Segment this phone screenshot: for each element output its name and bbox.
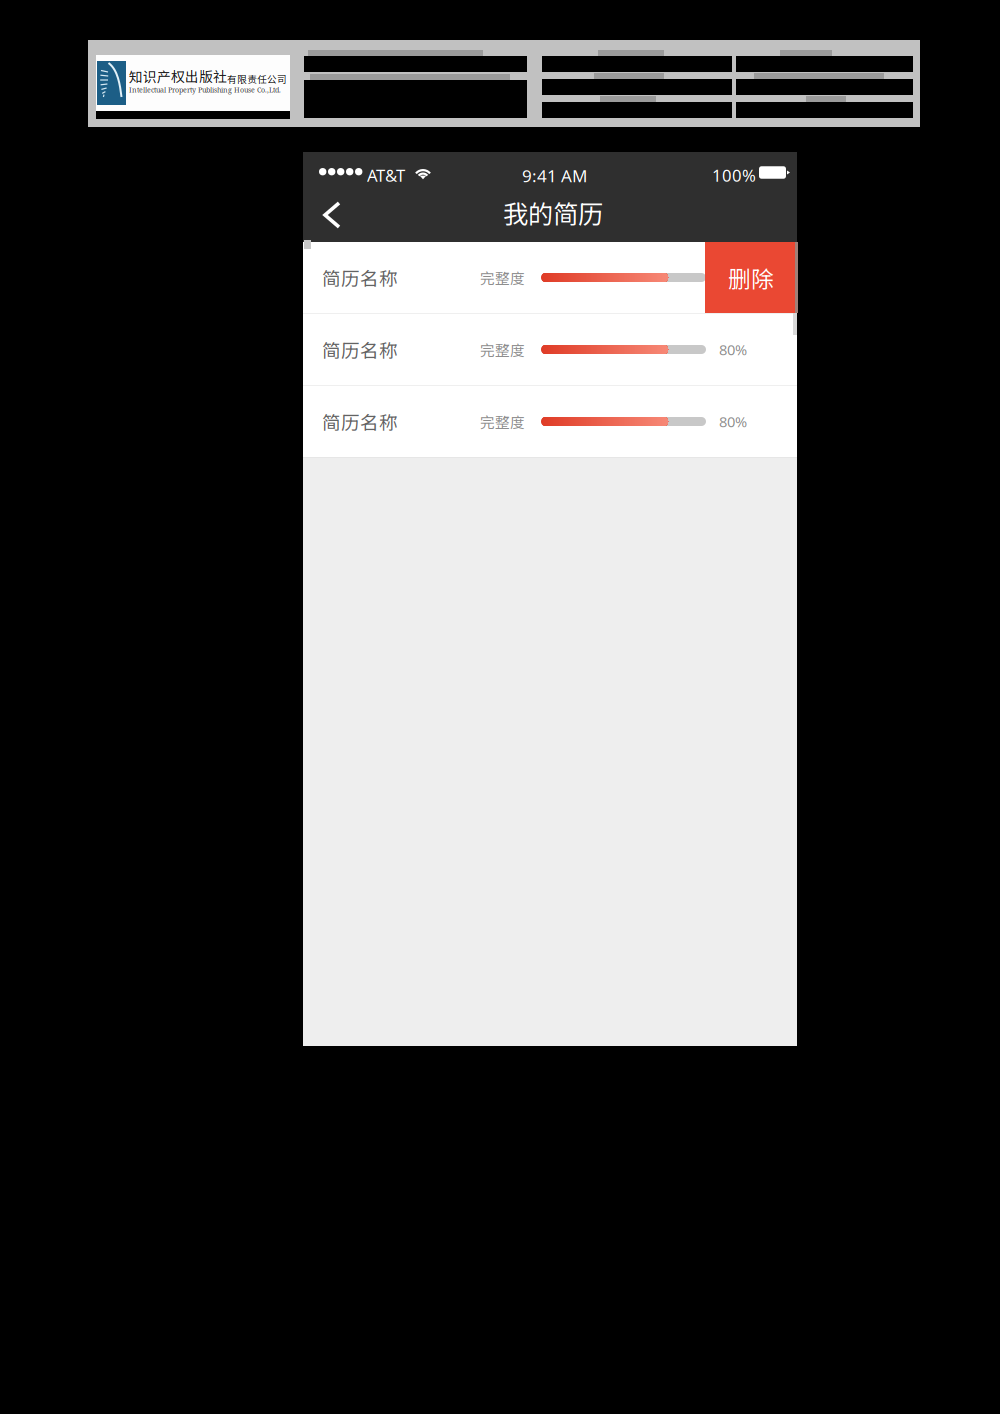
staticText: Intellectual Property Publishing House C…: [129, 85, 281, 95]
staticText: 100%: [712, 164, 756, 187]
button[interactable]: Back: [303, 196, 357, 242]
staticText: 80%: [719, 411, 747, 431]
staticText: 有限责任公司: [227, 72, 287, 86]
staticText: 删除: [728, 261, 774, 294]
staticText: 80%: [719, 339, 747, 359]
staticText: 知识产权出版社: [129, 66, 227, 86]
staticText: 简历名称: [322, 336, 398, 363]
staticText: 完整度: [480, 267, 525, 288]
staticText: 完整度: [480, 339, 525, 360]
button[interactable]: 删除: [705, 242, 797, 313]
staticText: 9:41 AM: [522, 164, 587, 187]
staticText: 80%: [719, 267, 747, 287]
staticText: AT&T: [367, 164, 405, 187]
staticText: 我的简历: [503, 194, 603, 231]
staticText: 简历名称: [322, 264, 398, 291]
staticText: 简历名称: [322, 408, 398, 435]
staticText: 完整度: [480, 411, 525, 432]
